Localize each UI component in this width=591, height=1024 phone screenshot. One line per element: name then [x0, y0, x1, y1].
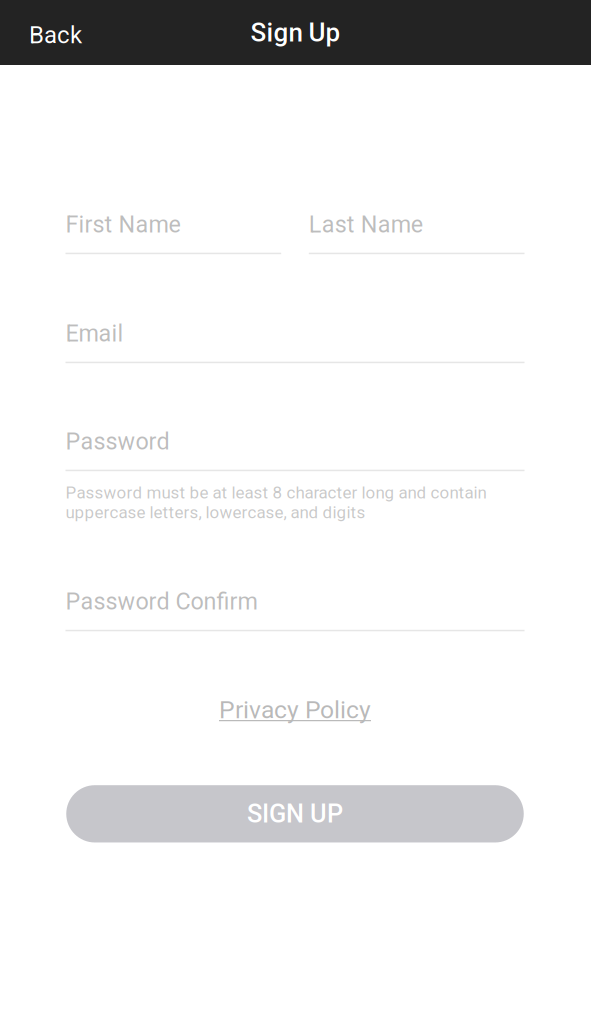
- button[interactable]: Back: [0, 0, 100, 64]
- staticText: First Name: [65, 211, 180, 238]
- staticText: Privacy Policy: [219, 695, 371, 724]
- staticText: Password: [65, 428, 169, 455]
- staticText: Last Name: [309, 211, 423, 238]
- staticText: SIGN UP: [247, 799, 343, 829]
- staticText: Password Confirm: [65, 588, 257, 615]
- button[interactable]: SIGN UP: [65, 785, 524, 842]
- staticText: Sign Up: [250, 17, 340, 48]
- staticText: Password must be at least 8 character lo…: [65, 483, 486, 522]
- button[interactable]: Last Name: [309, 211, 524, 254]
- button[interactable]: First Name: [65, 211, 281, 254]
- staticText: Email: [65, 320, 123, 347]
- button[interactable]: Password Confirm: [65, 588, 524, 631]
- button[interactable]: Email: [65, 320, 524, 363]
- button[interactable]: Password: [65, 428, 524, 471]
- staticText: Back: [29, 21, 82, 49]
- button[interactable]: Privacy Policy: [65, 695, 524, 724]
